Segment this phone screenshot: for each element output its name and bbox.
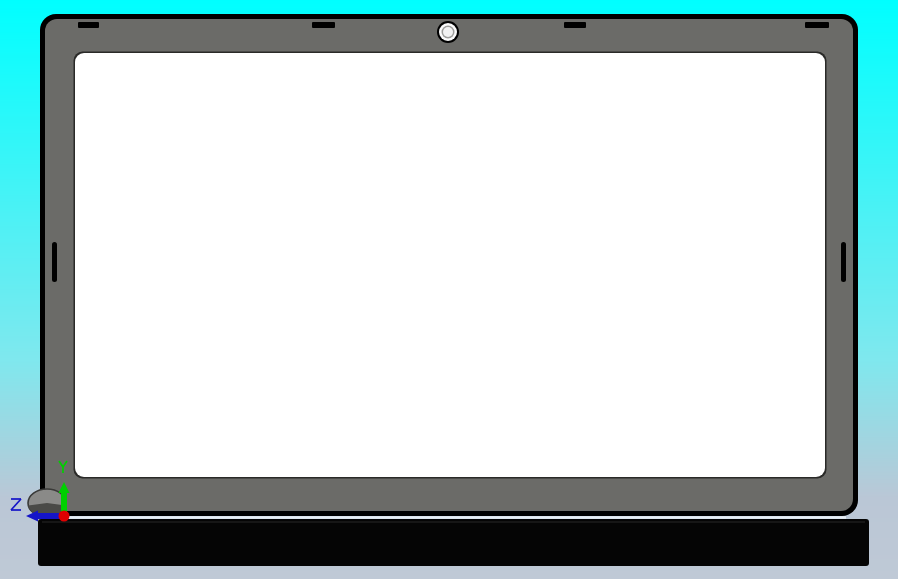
button[interactable]: 3D viewport showing laptop model — [0, 0, 898, 579]
